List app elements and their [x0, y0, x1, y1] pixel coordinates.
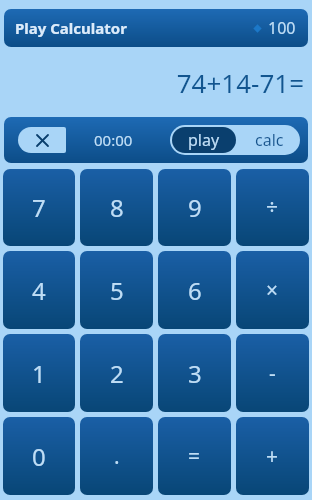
staticText: 100	[268, 17, 296, 39]
staticText: -	[269, 359, 276, 388]
staticText: 3	[188, 357, 202, 390]
staticText: =	[188, 442, 201, 471]
button[interactable]: 7	[3, 169, 75, 246]
staticText: play	[188, 129, 220, 151]
button[interactable]: play	[172, 127, 236, 153]
button[interactable]: calc	[238, 125, 300, 155]
button[interactable]: 9	[158, 169, 231, 246]
button[interactable]: -	[236, 334, 309, 412]
button[interactable]: Close	[18, 127, 66, 153]
staticText: 0	[32, 440, 46, 473]
staticText: Play Calculator	[15, 18, 127, 38]
staticText: 2	[110, 357, 124, 390]
staticText: 7	[32, 191, 46, 224]
button[interactable]: .	[80, 417, 153, 495]
staticText: ÷	[266, 193, 279, 222]
button[interactable]: 1	[3, 334, 75, 412]
button[interactable]: 6	[158, 251, 231, 329]
staticText: 74+14-71=	[176, 65, 304, 100]
button[interactable]: 8	[80, 169, 153, 246]
button[interactable]: 5	[80, 251, 153, 329]
staticText: 8	[110, 191, 124, 224]
staticText: +	[266, 442, 279, 471]
button[interactable]: 3	[158, 334, 231, 412]
button[interactable]: Play Calculator	[4, 9, 308, 47]
staticText: 5	[110, 274, 124, 307]
staticText: 1	[32, 357, 46, 390]
staticText: ×	[266, 276, 279, 305]
button[interactable]: ÷	[236, 169, 309, 246]
staticText: .	[114, 442, 120, 471]
button[interactable]: 4	[3, 251, 75, 329]
staticText: 9	[188, 191, 202, 224]
button[interactable]: +	[236, 417, 309, 495]
staticText: 00:00	[94, 130, 133, 150]
button[interactable]: 0	[3, 417, 75, 495]
staticText: calc	[255, 129, 284, 151]
button[interactable]: 2	[80, 334, 153, 412]
staticText: 6	[188, 274, 202, 307]
staticText: 4	[32, 274, 46, 307]
button[interactable]: ×	[236, 251, 309, 329]
button[interactable]: =	[158, 417, 231, 495]
